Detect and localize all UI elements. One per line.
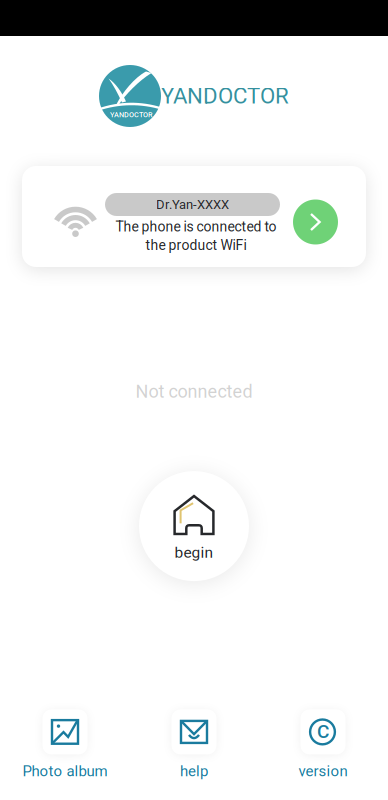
staticText: YANDOCTOR xyxy=(110,110,153,119)
staticText: begin xyxy=(174,543,213,561)
button[interactable]: Connect xyxy=(293,199,338,244)
staticText: Not connected xyxy=(135,381,252,402)
button[interactable]: C xyxy=(258,709,387,780)
button[interactable]: help xyxy=(129,709,258,780)
staticText: YANDOCTOR xyxy=(161,83,289,109)
staticText: help xyxy=(180,762,208,780)
button[interactable]: begin xyxy=(139,471,249,581)
staticText: the product WiFi xyxy=(145,237,246,253)
staticText: C xyxy=(317,720,329,743)
staticText: The phone is connected to xyxy=(115,219,276,235)
staticText: version xyxy=(298,762,347,780)
staticText: Photo album xyxy=(22,762,107,780)
button[interactable]: Photo album xyxy=(0,709,129,780)
staticText: Dr.Yan-XXXX xyxy=(156,197,229,212)
